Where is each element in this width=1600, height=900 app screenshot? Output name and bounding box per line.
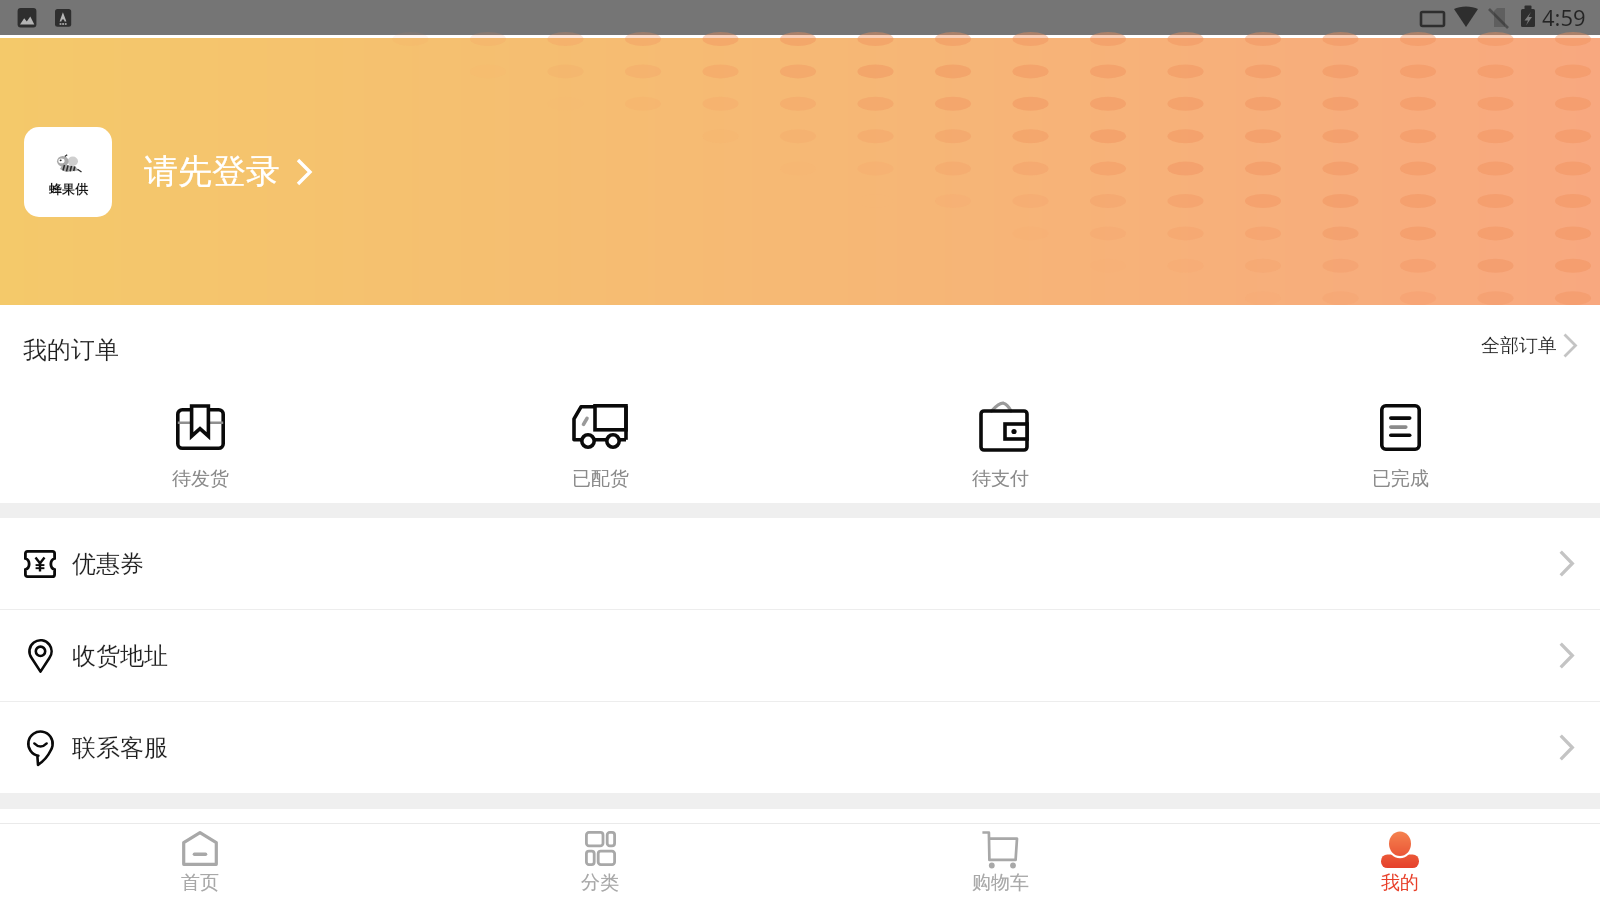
staticText: 优惠券 (72, 549, 144, 579)
staticText: 我的 (1381, 871, 1419, 895)
staticText: 蜂果供 (49, 181, 88, 197)
button[interactable]: 待支付 (800, 393, 1200, 503)
staticText: 4:59 (1542, 2, 1586, 32)
button[interactable]: 购物车 (800, 824, 1200, 900)
button[interactable]: 分类 (400, 824, 800, 900)
button[interactable]: 我的 (1200, 824, 1600, 900)
button[interactable]: 待发货 (0, 393, 400, 503)
button[interactable]: 已配货 (400, 393, 800, 503)
staticText: 待支付 (972, 467, 1029, 491)
staticText: 已配货 (572, 467, 629, 491)
staticText: 全部订单 (1481, 334, 1557, 358)
staticText: 待发货 (172, 467, 229, 491)
staticText: 购物车 (972, 871, 1029, 895)
button[interactable]: 收货地址 (0, 610, 1600, 701)
button[interactable]: 优惠券 (0, 518, 1600, 609)
staticText: 联系客服 (72, 733, 168, 763)
button[interactable]: Profile avatar (24, 127, 112, 217)
staticText: 我的订单 (23, 335, 119, 365)
staticText: 分类 (581, 871, 619, 895)
button[interactable]: 已完成 (1200, 393, 1600, 503)
staticText: 已完成 (1372, 467, 1429, 491)
button[interactable]: 首页 (0, 824, 400, 900)
staticText: 请先登录 (144, 150, 280, 193)
staticText: 首页 (181, 871, 219, 895)
button[interactable]: 全部订单 (1481, 337, 1600, 362)
button[interactable]: 联系客服 (0, 702, 1600, 793)
button[interactable]: 请先登录 (144, 150, 313, 193)
staticText: 收货地址 (72, 641, 168, 671)
